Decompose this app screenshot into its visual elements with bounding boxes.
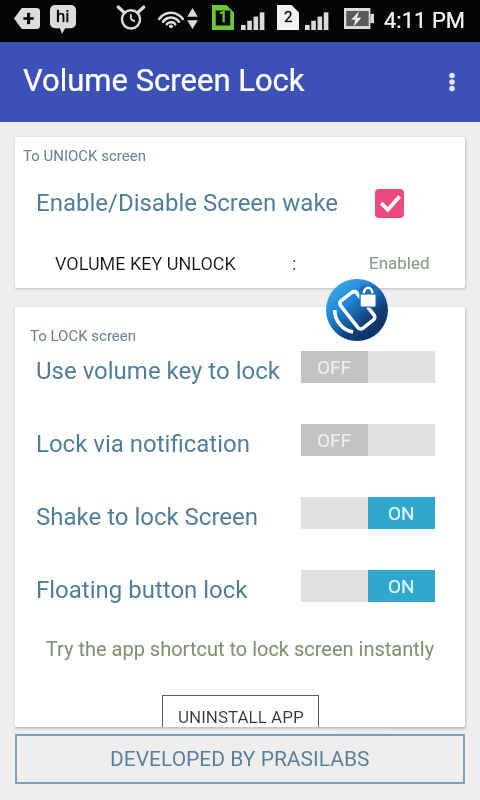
staticText: 2 (284, 8, 293, 26)
staticText: DEVELOPED BY PRASILABS (110, 747, 370, 772)
staticText: Lock via notification (36, 430, 250, 458)
staticText: Floating button lock (36, 576, 248, 604)
button[interactable]: Lock via notification (15, 417, 465, 471)
button[interactable]: Use volume key to lock (15, 344, 465, 398)
button[interactable]: Enable/Disable Screen wake (15, 177, 465, 229)
button[interactable]: Floating lock button (326, 279, 388, 341)
staticText: Try the app shortcut to lock screen inst… (15, 637, 465, 660)
staticText: UNINSTALL APP (178, 707, 304, 727)
button[interactable]: VOLUME KEY UNLOCK (15, 243, 465, 283)
button[interactable]: Floating button lock (15, 563, 465, 617)
staticText: VOLUME KEY UNLOCK (55, 253, 236, 274)
staticText: 4:11 PM (384, 8, 465, 34)
button[interactable]: Shake to lock Screen (15, 490, 465, 544)
staticText: Volume Screen Lock (23, 62, 305, 98)
staticText: OFF (317, 356, 352, 378)
staticText: OFF (317, 429, 352, 451)
staticText: : (292, 253, 297, 274)
button[interactable]: More options (424, 42, 480, 122)
staticText: Enable/Disable Screen wake (36, 189, 339, 217)
staticText: Shake to lock Screen (36, 503, 259, 531)
staticText: Enabled (369, 253, 430, 273)
button[interactable]: UNINSTALL APP (162, 695, 319, 727)
staticText: To UNIOCK screen (23, 147, 146, 165)
staticText: To LOCK screen (30, 327, 137, 345)
staticText: 1 (219, 8, 228, 26)
button[interactable]: DEVELOPED BY PRASILABS (15, 734, 465, 784)
staticText: hi (56, 6, 70, 26)
staticText: ON (388, 575, 415, 597)
staticText: Use volume key to lock (36, 357, 280, 385)
staticText: ON (388, 502, 415, 524)
